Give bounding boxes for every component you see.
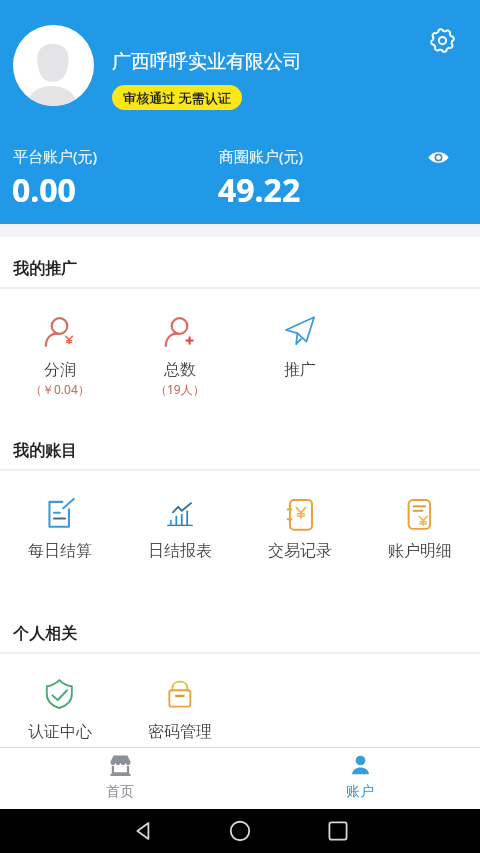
staticText: 交易记录: [268, 541, 332, 561]
staticText: （19人）: [155, 381, 205, 397]
staticText: 账户明细: [388, 541, 452, 561]
button[interactable]: 日结报表: [120, 471, 240, 561]
button[interactable]: 审核通过 无需认证: [112, 85, 242, 110]
button[interactable]: Back: [133, 820, 155, 842]
staticText: 总数: [164, 360, 196, 380]
staticText: 商圈账户(元): [219, 146, 304, 166]
button[interactable]: 首页: [0, 748, 240, 801]
button[interactable]: Recent apps: [327, 820, 349, 842]
staticText: 认证中心: [28, 722, 92, 742]
button[interactable]: 每日结算: [0, 471, 120, 561]
button[interactable]: 分润: [0, 289, 120, 397]
button[interactable]: 密码管理: [120, 654, 240, 742]
staticText: 推广: [284, 360, 316, 380]
staticText: （￥0.04）: [30, 381, 90, 397]
staticText: 广西呼呼实业有限公司: [112, 50, 302, 74]
button[interactable]: 交易记录: [240, 471, 360, 561]
staticText: 账户: [346, 783, 374, 801]
button[interactable]: 推广: [240, 289, 360, 380]
staticText: 分润: [44, 360, 76, 380]
staticText: 首页: [106, 783, 134, 801]
button[interactable]: Home: [229, 820, 251, 842]
staticText: 个人相关: [13, 624, 77, 644]
staticText: 平台账户(元): [13, 146, 98, 166]
staticText: 密码管理: [148, 722, 212, 742]
button[interactable]: Toggle balance visibility: [427, 146, 450, 169]
staticText: 日结报表: [148, 541, 212, 561]
staticText: 审核通过 无需认证: [123, 89, 231, 107]
button[interactable]: 账户明细: [360, 471, 480, 561]
staticText: 49.22: [218, 168, 301, 212]
staticText: 0.00: [12, 168, 76, 212]
staticText: 我的账目: [13, 441, 77, 461]
staticText: 我的推广: [13, 259, 77, 279]
button[interactable]: 账户: [240, 748, 480, 801]
staticText: 每日结算: [28, 541, 92, 561]
button[interactable]: Settings: [430, 28, 455, 53]
button[interactable]: 认证中心: [0, 654, 120, 742]
button[interactable]: 总数: [120, 289, 240, 397]
button[interactable]: Profile avatar: [13, 25, 94, 106]
